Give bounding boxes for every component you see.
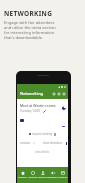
staticText: show attendees: [43, 141, 63, 145]
button[interactable]: Handbook: [38, 167, 48, 183]
button[interactable]: Search: [52, 92, 56, 96]
staticText: Compass: [28, 176, 38, 179]
staticText: Tuesday 14:00: [20, 109, 41, 113]
button[interactable]: Meet at Westin rooms: [20, 103, 66, 113]
staticText: NETWORKING: [4, 9, 53, 18]
button[interactable]: Reminder: [48, 167, 58, 183]
button[interactable]: Schedule: [58, 167, 68, 183]
staticText: Meet at Westin rooms: [20, 103, 56, 108]
staticText: Contacts: [18, 176, 27, 179]
staticText: view details: [35, 150, 50, 154]
button[interactable]: Contacts: [17, 167, 28, 183]
staticText: Networking: [20, 91, 44, 97]
button[interactable]: Compass: [28, 167, 38, 183]
staticText: request meeting: [32, 132, 53, 136]
staticText: Schedule: [58, 176, 68, 179]
staticText: Handbook: [38, 176, 48, 179]
staticText: Engage with fair attendees and utilize t…: [4, 20, 59, 40]
staticText: Reminder: [48, 176, 58, 179]
button[interactable]: Filter: [57, 92, 61, 96]
button[interactable]: More: [62, 92, 66, 96]
staticText: contacts: [20, 141, 31, 145]
